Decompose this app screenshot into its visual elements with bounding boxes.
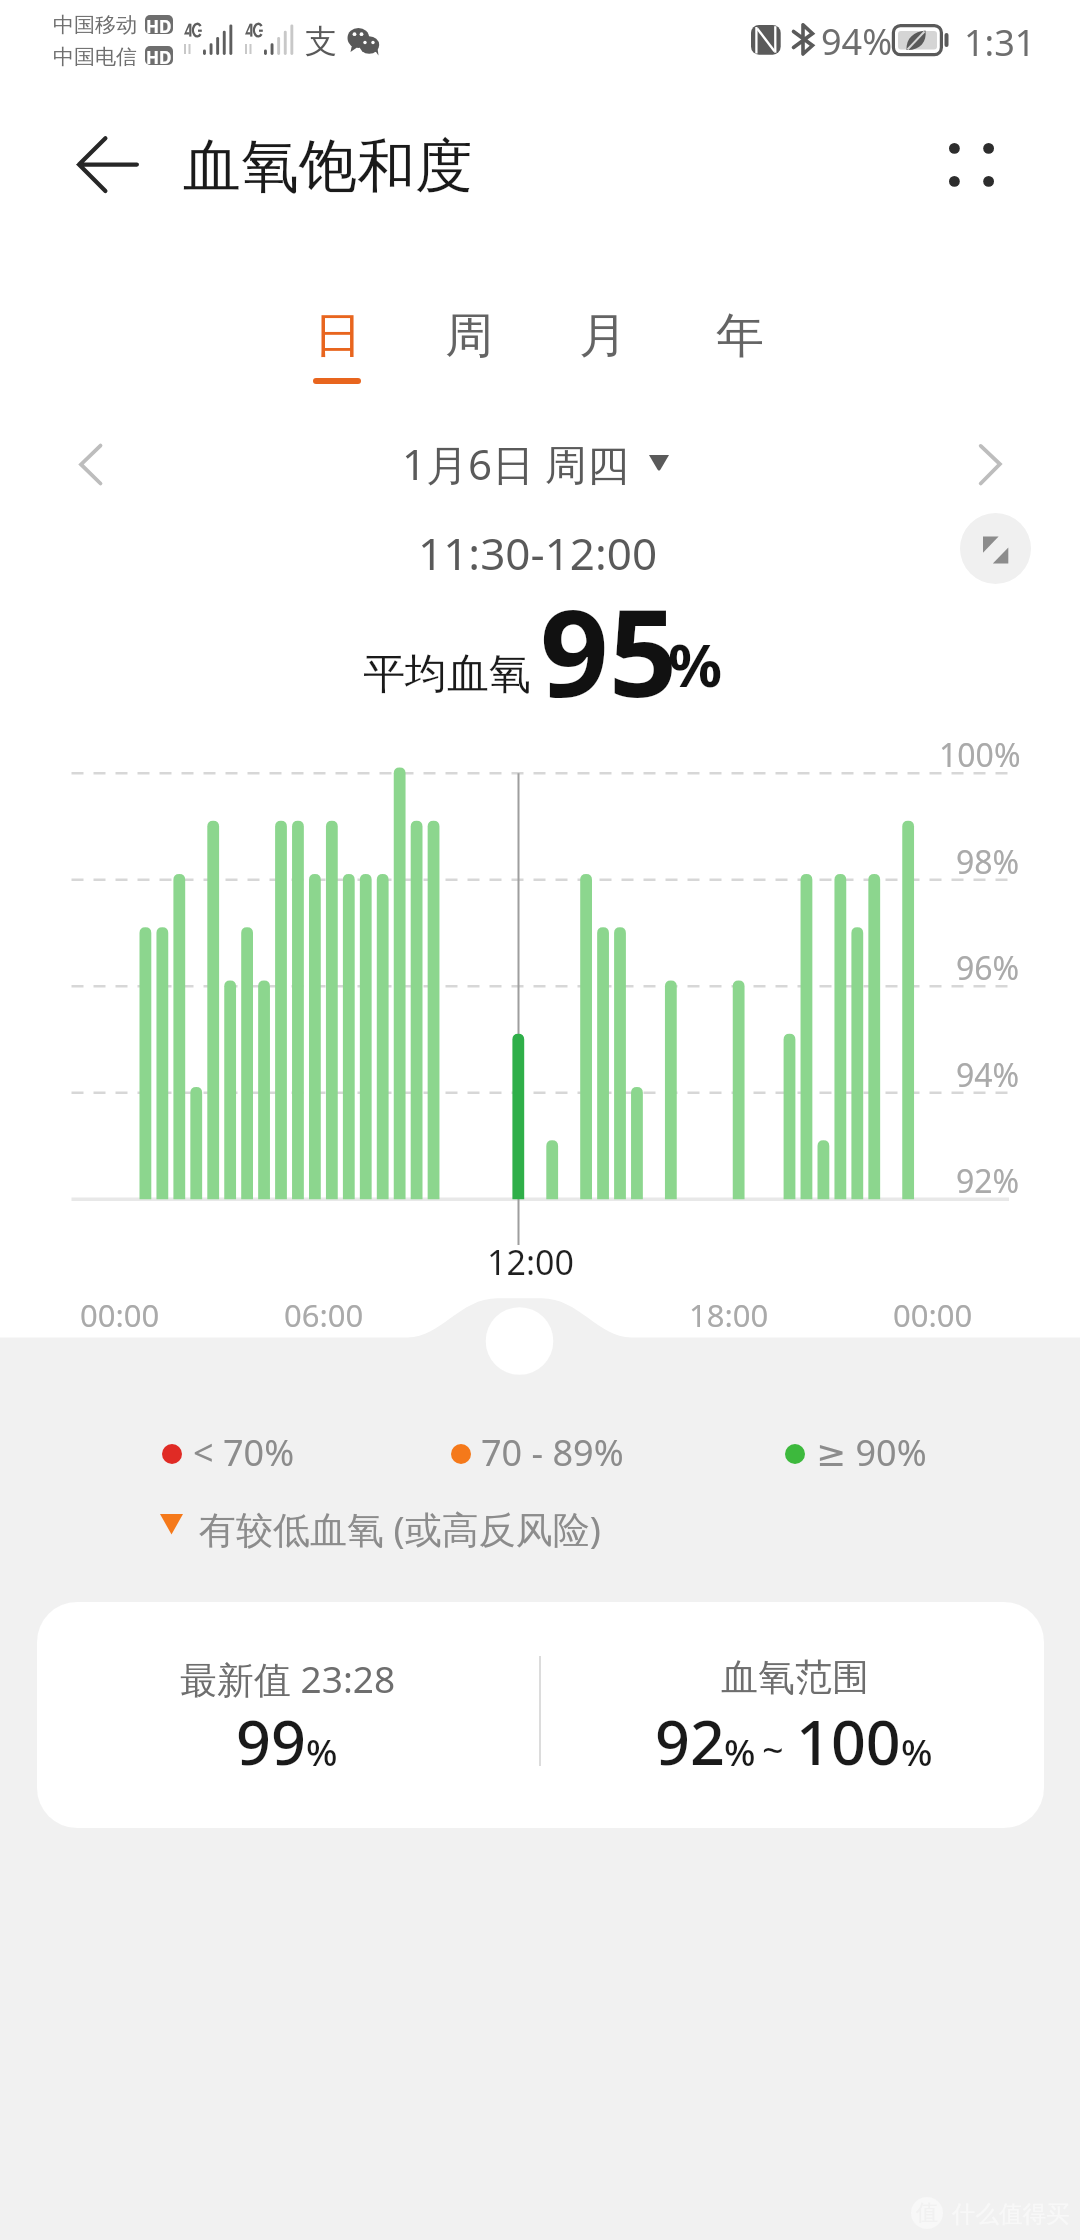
staticText: 100 <box>796 1700 901 1783</box>
staticText: 1:31 <box>964 18 1036 67</box>
button[interactable]: 年 <box>690 295 790 391</box>
staticText: 年 <box>716 306 764 366</box>
button[interactable]: Back <box>50 126 130 206</box>
staticText: 血氧范围 <box>721 1654 869 1701</box>
staticText: 95 <box>540 569 678 732</box>
staticText: HD <box>146 46 172 65</box>
button[interactable]: 最新值 23:28 <box>37 1602 1044 1828</box>
staticText: 92% <box>956 1159 1020 1203</box>
staticText: 11:30-12:00 <box>418 523 658 583</box>
staticText: % <box>668 623 723 705</box>
staticText: 血氧饱和度 <box>183 130 473 203</box>
staticText: 98% <box>956 840 1020 884</box>
button[interactable]: Next day <box>955 428 1027 500</box>
staticText: ~ <box>762 1723 784 1775</box>
staticText: 94% <box>821 17 893 66</box>
staticText: 有较低血氧 (或高反风险) <box>199 1503 601 1554</box>
staticText: 94% <box>956 1053 1020 1097</box>
button[interactable]: 日 <box>288 295 388 391</box>
staticText: 最新值 23:28 <box>180 1653 396 1704</box>
button[interactable]: 周 <box>419 295 519 391</box>
staticText: 月 <box>579 306 627 366</box>
staticText: 支 <box>305 21 337 61</box>
staticText: % <box>901 1726 933 1776</box>
staticText: 92 <box>655 1700 725 1783</box>
staticText: < 70% <box>193 1428 295 1470</box>
staticText: 00:00 <box>893 1294 973 1336</box>
staticText: HD <box>146 15 172 34</box>
button[interactable]: 1月6日 周四 <box>396 436 680 496</box>
staticText: 99 <box>236 1700 306 1783</box>
staticText: 中国移动 <box>53 12 137 38</box>
staticText: 周 <box>445 306 493 366</box>
staticText: 中国电信 <box>53 44 137 70</box>
staticText: 12:00 <box>487 1239 574 1285</box>
staticText: 100% <box>939 733 1021 777</box>
button[interactable]: More options <box>932 126 1012 206</box>
staticText: % <box>306 1726 338 1776</box>
staticText: 00:00 <box>80 1294 160 1336</box>
staticText: 1月6日 周四 <box>402 435 629 492</box>
button[interactable]: Previous day <box>61 428 133 500</box>
staticText: 平均血氧 <box>363 648 531 701</box>
staticText: 06:00 <box>284 1294 364 1336</box>
button[interactable]: Expand chart <box>960 513 1031 584</box>
staticText: 18:00 <box>689 1294 769 1336</box>
button[interactable]: 月 <box>553 295 653 391</box>
staticText: ≥ 90% <box>816 1428 927 1470</box>
staticText: 日 <box>314 306 362 366</box>
staticText: 70 - 89% <box>481 1428 624 1470</box>
staticText: 96% <box>956 946 1020 990</box>
staticText: % <box>724 1726 756 1776</box>
